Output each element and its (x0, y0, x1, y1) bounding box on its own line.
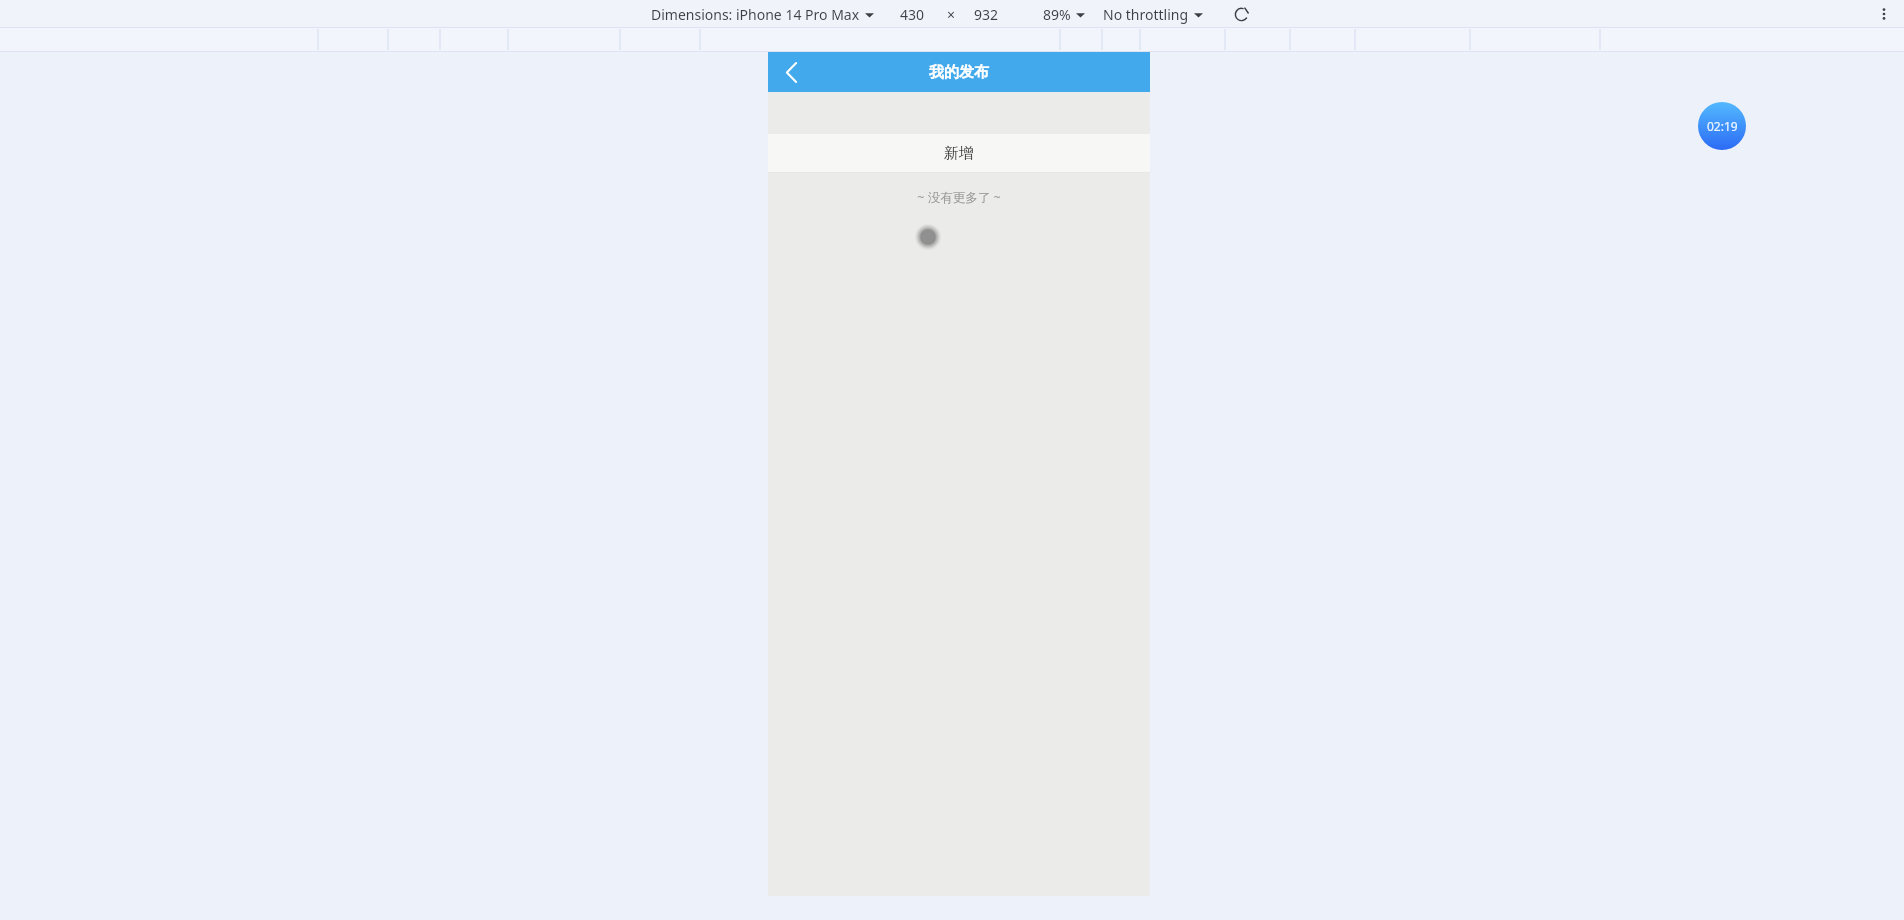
button[interactable]: No throttling (1103, 5, 1203, 24)
staticText: 我的发布 (929, 63, 989, 82)
button[interactable]: 02:19 (1698, 102, 1746, 150)
button[interactable]: Dimensions: iPhone 14 Pro Max (651, 5, 874, 24)
button[interactable]: 89% (1043, 5, 1085, 24)
staticText: ~ 没有更多了 ~ (768, 189, 1150, 206)
staticText: 89% (1043, 5, 1071, 24)
staticText: 430 (900, 5, 925, 24)
button[interactable]: Rotate (1229, 2, 1253, 26)
staticText: 02:19 (1707, 118, 1738, 134)
staticText: × (947, 5, 956, 24)
staticText: 932 (974, 5, 999, 24)
button[interactable]: More options (1872, 2, 1896, 26)
staticText: 新增 (944, 144, 974, 163)
staticText: No throttling (1103, 5, 1189, 24)
button[interactable]: 新增 (768, 134, 1150, 172)
button[interactable]: Back (768, 52, 814, 92)
staticText: Dimensions: iPhone 14 Pro Max (651, 5, 860, 24)
